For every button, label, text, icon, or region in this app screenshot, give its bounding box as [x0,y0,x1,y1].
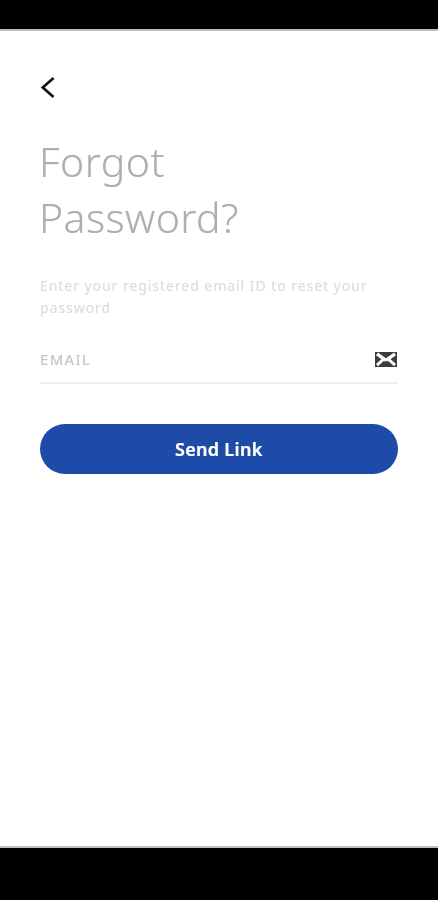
staticText: Forgot [39,133,165,189]
button[interactable]: Send Link [40,424,398,474]
button[interactable]: EMAIL [40,347,398,384]
staticText: Send Link [175,437,263,462]
button[interactable]: Back [26,65,70,109]
staticText: Enter your registered email ID to reset … [40,276,400,317]
staticText: Password? [39,189,239,245]
other: Email [374,347,398,371]
staticText: EMAIL [40,349,91,369]
